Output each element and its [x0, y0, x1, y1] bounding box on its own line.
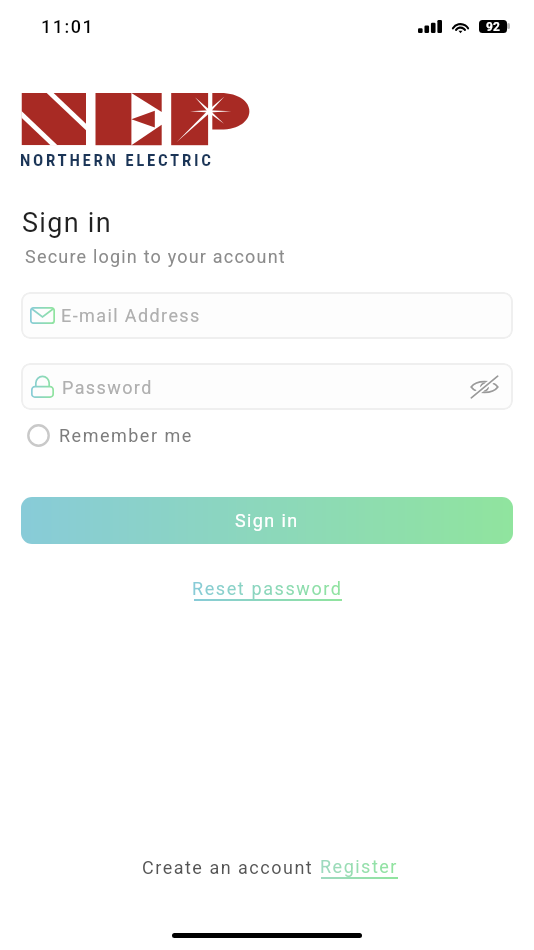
staticText: Sign in: [235, 510, 299, 531]
button[interactable]: Password: [21, 363, 513, 410]
button[interactable]: Reset password: [186, 575, 349, 604]
staticText: Password: [62, 377, 153, 398]
staticText: Secure login to your account: [25, 246, 286, 267]
button[interactable]: Show password: [467, 370, 501, 404]
staticText: E-mail Address: [61, 305, 201, 326]
button[interactable]: E-mail Address: [21, 292, 513, 339]
staticText: 11:01: [41, 16, 95, 37]
staticText: Reset password: [192, 578, 343, 599]
staticText: Register: [320, 856, 398, 877]
button[interactable]: Remember me: [26, 423, 193, 448]
staticText: 92: [486, 20, 500, 33]
staticText: Sign in: [22, 207, 112, 239]
button[interactable]: Sign in: [21, 497, 513, 544]
staticText: NORTHERN ELECTRIC: [20, 150, 214, 170]
staticText: Create an account: [142, 857, 320, 878]
staticText: Remember me: [59, 425, 193, 446]
button[interactable]: Register: [320, 856, 398, 879]
